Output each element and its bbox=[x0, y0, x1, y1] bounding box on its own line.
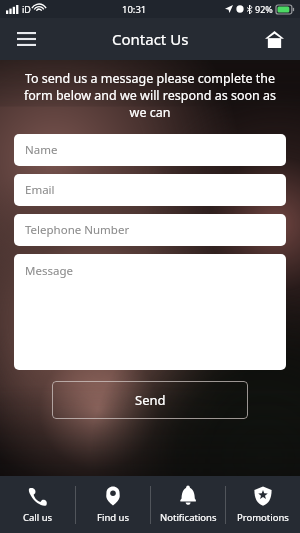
staticText: Name bbox=[25, 142, 58, 158]
button[interactable]: Email bbox=[14, 174, 286, 206]
button[interactable]: Message bbox=[14, 254, 286, 370]
button[interactable]: Telephone Number bbox=[14, 214, 286, 246]
staticText: Call us bbox=[23, 511, 53, 524]
staticText: Promotions bbox=[237, 511, 289, 524]
button[interactable]: Find us bbox=[76, 476, 150, 533]
staticText: Telephone Number bbox=[25, 222, 130, 238]
staticText: Contact Us bbox=[112, 29, 189, 49]
button[interactable]: Home bbox=[254, 19, 294, 59]
button[interactable]: Notifications bbox=[151, 476, 225, 533]
button[interactable]: Call us bbox=[0, 476, 75, 533]
button[interactable]: Name bbox=[14, 134, 286, 166]
button[interactable]: Promotions bbox=[226, 476, 300, 533]
button[interactable]: Send bbox=[52, 381, 248, 419]
staticText: Notifications bbox=[160, 511, 217, 524]
staticText: Email bbox=[25, 182, 55, 198]
staticText: Message bbox=[25, 263, 73, 279]
staticText: 92% bbox=[255, 3, 273, 15]
staticText: To send us a message please complete the… bbox=[16, 70, 284, 121]
staticText: Find us bbox=[97, 511, 129, 524]
staticText: 10:31 bbox=[122, 3, 147, 16]
button[interactable]: Menu bbox=[6, 19, 46, 59]
staticText: iD bbox=[22, 3, 31, 15]
staticText: Send bbox=[135, 391, 166, 409]
